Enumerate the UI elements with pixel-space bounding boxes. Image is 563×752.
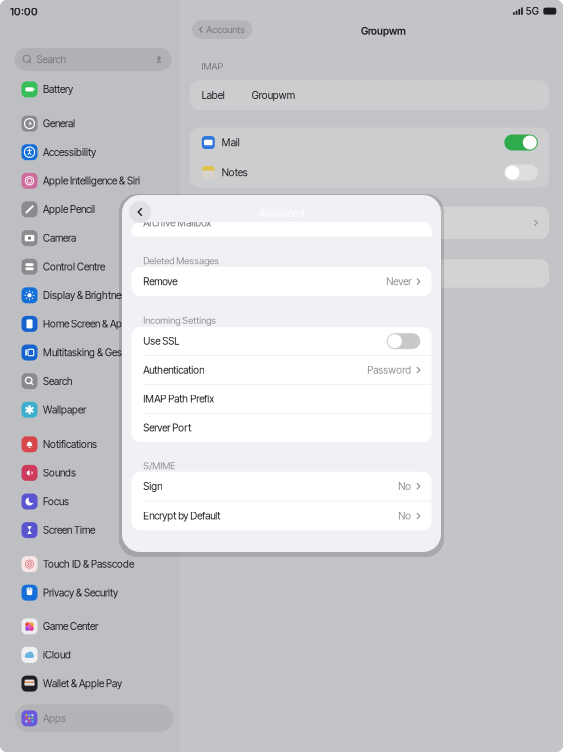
button[interactable]: Apple Intelligence & Siri	[0, 170, 200, 192]
staticText: Privacy & Security	[43, 587, 118, 599]
button[interactable]: Wallet & Apple Pay	[0, 673, 200, 695]
button[interactable]: Home Screen & App Library	[0, 313, 200, 335]
staticText: S/MIME	[143, 460, 175, 471]
button[interactable]: Server Port	[131, 414, 431, 442]
staticText: Advanced	[258, 207, 304, 220]
button[interactable]: Screen Time	[0, 519, 200, 541]
staticText: Server Port	[143, 422, 191, 434]
staticText: Deleted Messages	[143, 255, 219, 266]
staticText: No	[398, 510, 411, 522]
staticText: Control Centre	[43, 261, 105, 273]
staticText: Multitasking & Gestures	[43, 346, 143, 359]
staticText: Apple Intelligence & Siri	[43, 175, 140, 187]
staticText: IMAP	[201, 60, 223, 72]
staticText: Never	[386, 275, 411, 288]
button[interactable]: Encrypt by Default	[131, 501, 431, 530]
staticText: Incoming Settings	[143, 314, 216, 326]
button[interactable]: Camera	[0, 227, 200, 249]
staticText: Apps	[43, 712, 66, 724]
staticText: 10:00	[10, 5, 38, 18]
staticText: Wallet & Apple Pay	[43, 677, 122, 690]
staticText: Apple Pencil	[43, 203, 95, 216]
button[interactable]: Accessibility	[0, 141, 200, 163]
staticText: Authentication	[143, 364, 204, 376]
staticText: Password	[367, 364, 411, 376]
button[interactable]: Notifications	[0, 433, 200, 455]
staticText: Home Screen & App Library	[43, 318, 159, 330]
staticText: Groupwm	[361, 25, 406, 37]
button[interactable]: Apps	[15, 704, 173, 732]
staticText: Display & Brightness	[43, 289, 131, 301]
staticText: Use SSL	[143, 335, 179, 347]
button[interactable]: Remove	[131, 267, 431, 296]
staticText: Remove	[143, 275, 177, 288]
staticText: Battery	[43, 83, 73, 96]
button[interactable]: IMAP Path Prefix	[131, 385, 431, 413]
button[interactable]: Control Centre	[0, 256, 200, 278]
staticText: Label	[202, 89, 225, 101]
staticText: Sign	[143, 480, 162, 492]
button[interactable]: Authentication	[131, 356, 431, 384]
staticText: iCloud	[43, 649, 71, 661]
button[interactable]: Apple Pencil	[0, 198, 200, 220]
button[interactable]: Battery	[0, 78, 200, 100]
staticText: Accessibility	[43, 146, 96, 158]
button[interactable]: Search	[14, 48, 171, 71]
button[interactable]: Touch ID & Passcode	[0, 553, 200, 575]
staticText: Sounds	[43, 467, 76, 479]
button[interactable]: Search	[0, 370, 200, 392]
staticText: Touch ID & Passcode	[43, 558, 134, 570]
button[interactable]: Sign	[131, 472, 431, 501]
button[interactable]: Multitasking & Gestures	[0, 341, 200, 363]
staticText: 5G	[526, 5, 539, 17]
staticText: Encrypt by Default	[143, 510, 220, 522]
staticText: Search	[43, 375, 73, 387]
button[interactable]: General	[0, 113, 200, 135]
staticText: Accounts	[206, 24, 245, 35]
staticText: Notifications	[43, 438, 97, 450]
button[interactable]: iCloud	[0, 644, 200, 666]
staticText: Search	[36, 53, 66, 66]
staticText: Screen Time	[43, 524, 95, 536]
button[interactable]: Display & Brightness	[0, 284, 200, 306]
button[interactable]: Back	[129, 201, 151, 223]
staticText: Archive Mailbox	[143, 217, 211, 229]
button[interactable]: Privacy & Security	[0, 582, 200, 604]
button[interactable]: Wallpaper	[0, 399, 200, 421]
button[interactable]: Accounts	[192, 20, 252, 39]
staticText: Groupwm	[252, 89, 295, 101]
staticText: IMAP Path Prefix	[143, 393, 214, 405]
button[interactable]: Focus	[0, 490, 200, 512]
staticText: Camera	[43, 232, 76, 244]
staticText: No	[398, 480, 411, 492]
staticText: Mail	[222, 136, 240, 149]
button[interactable]: Use SSL	[131, 327, 431, 355]
button[interactable]: Sounds	[0, 462, 200, 484]
staticText: Wallpaper	[43, 404, 86, 416]
staticText: Focus	[43, 495, 69, 508]
staticText: Game Center	[43, 620, 98, 632]
staticText: Notes	[222, 166, 248, 179]
staticText: General	[43, 117, 75, 130]
button[interactable]: Game Center	[0, 615, 200, 637]
